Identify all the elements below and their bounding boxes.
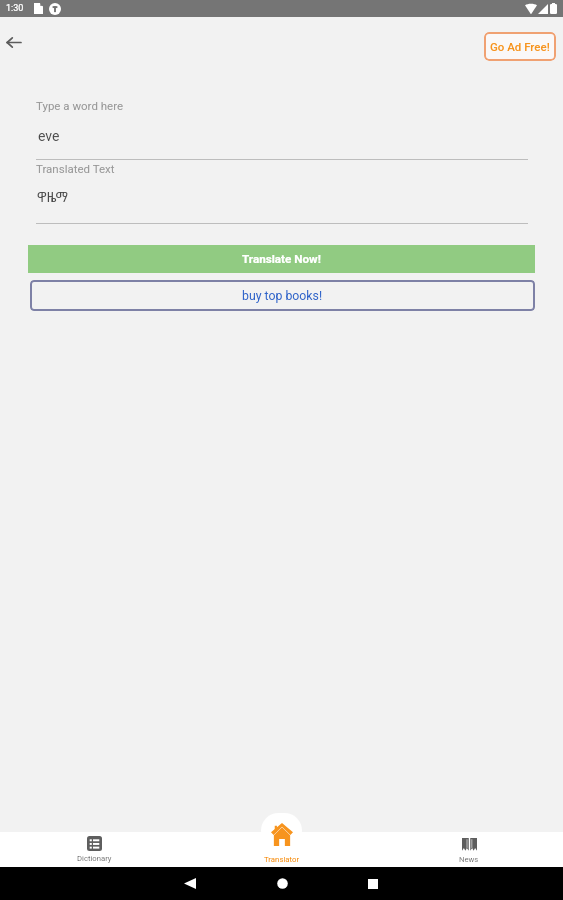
button[interactable]: buy top books! — [30, 280, 535, 311]
staticText: Translator — [264, 855, 300, 864]
staticText: Translated Text — [36, 162, 115, 175]
button[interactable]: Translate Now! — [28, 245, 535, 273]
staticText: Go Ad Free! — [490, 40, 550, 53]
staticText: Translate Now! — [242, 252, 321, 266]
staticText: buy top books! — [242, 289, 323, 303]
staticText: eve — [38, 128, 60, 144]
button[interactable]: Recent apps — [349, 867, 397, 900]
button[interactable]: Go Ad Free! — [484, 32, 556, 61]
staticText: Dictionary — [77, 854, 112, 863]
button[interactable]: News — [422, 832, 516, 867]
button[interactable]: Home — [258, 867, 306, 900]
button[interactable]: Back — [0, 26, 29, 58]
button[interactable]: Translator — [235, 832, 329, 867]
staticText: ዋዜማ — [37, 187, 68, 206]
staticText: 1:30 — [6, 3, 24, 14]
staticText: News — [459, 855, 479, 864]
button[interactable]: Back — [166, 867, 214, 900]
button[interactable]: Dictionary — [47, 832, 141, 867]
staticText: Type a word here — [36, 99, 124, 112]
